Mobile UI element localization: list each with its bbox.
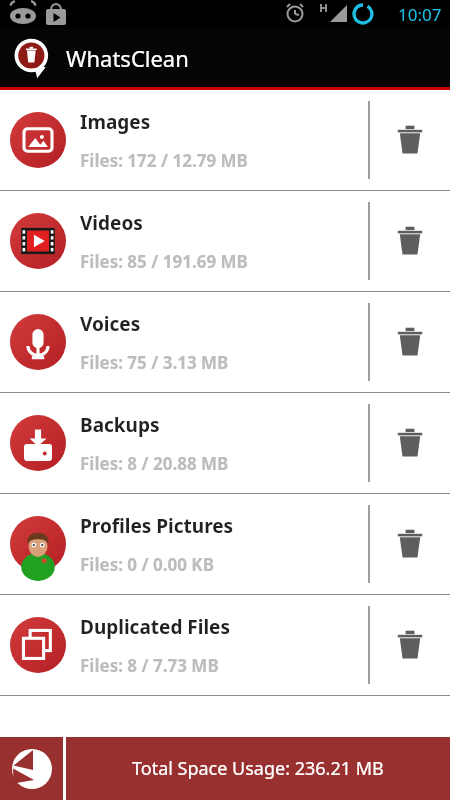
button[interactable]: Profiles Pictures [0, 494, 450, 594]
button[interactable]: Delete Duplicated Files [370, 595, 450, 695]
button[interactable]: Voices [0, 292, 450, 392]
staticText: WhatsClean [66, 43, 189, 73]
staticText: Files: 8 / 7.73 MB [80, 654, 219, 677]
button[interactable]: Total Space Usage: 236.21 MB [66, 737, 450, 800]
button[interactable]: Delete Images [370, 90, 450, 190]
staticText: Total Space Usage: 236.21 MB [132, 756, 384, 781]
staticText: Files: 85 / 191.69 MB [80, 250, 248, 273]
staticText: Voices [80, 311, 141, 337]
staticText: Backups [80, 412, 160, 438]
staticText: Images [80, 109, 151, 135]
staticText: Files: 8 / 20.88 MB [80, 452, 229, 475]
button[interactable]: Images [0, 90, 450, 190]
button[interactable]: Delete Videos [370, 191, 450, 291]
staticText: Files: 172 / 12.79 MB [80, 149, 248, 172]
button[interactable]: Delete Backups [370, 393, 450, 493]
button[interactable]: Storage statistics [0, 737, 63, 800]
staticText: Files: 75 / 3.13 MB [80, 351, 229, 374]
button[interactable]: Delete Profiles Pictures [370, 494, 450, 594]
staticText: Videos [80, 210, 143, 236]
staticText: Files: 0 / 0.00 KB [80, 553, 214, 576]
button[interactable]: Backups [0, 393, 450, 493]
staticText: Duplicated Files [80, 614, 230, 640]
staticText: Profiles Pictures [80, 513, 234, 539]
staticText: 10:07 [398, 3, 442, 26]
button[interactable]: Videos [0, 191, 450, 291]
button[interactable]: Delete Voices [370, 292, 450, 392]
button[interactable]: Duplicated Files [0, 595, 450, 695]
